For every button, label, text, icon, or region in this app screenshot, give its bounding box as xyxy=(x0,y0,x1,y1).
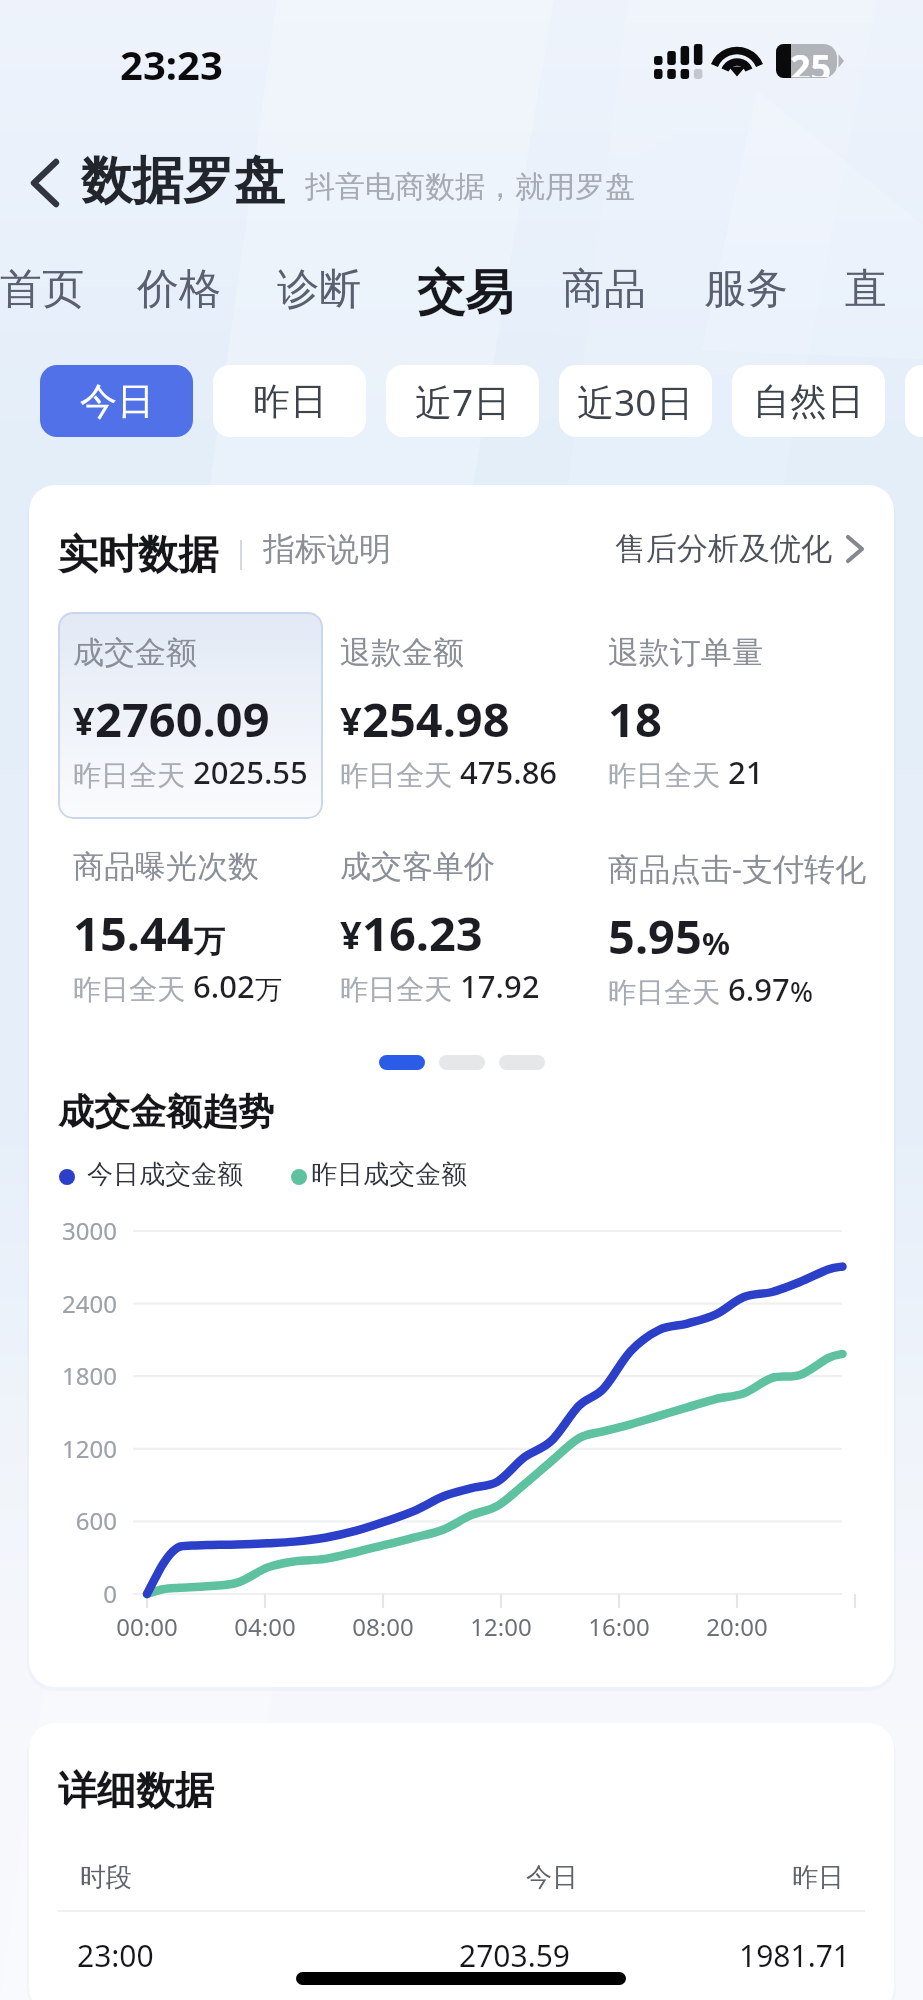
staticText: 昨日全天 xyxy=(73,972,185,1007)
staticText: 价格 xyxy=(137,263,221,316)
staticText: 直 xyxy=(845,263,887,316)
staticText: 今日 xyxy=(526,1861,578,1894)
staticText: 600 xyxy=(29,1504,117,1537)
button[interactable]: 23:00 xyxy=(29,1923,894,2000)
staticText: 昨日 xyxy=(792,1861,844,1894)
staticText: 2703.59 xyxy=(459,1935,570,1976)
staticText: 首页 xyxy=(0,263,84,316)
staticText: 20:00 xyxy=(677,1610,797,1643)
staticText: 昨日 xyxy=(253,378,327,425)
staticText: 23:00 xyxy=(77,1935,154,1976)
button[interactable]: 价格 xyxy=(123,255,235,324)
button[interactable]: 自 xyxy=(905,365,923,437)
staticText: 2400 xyxy=(29,1287,117,1320)
button[interactable]: Back xyxy=(12,150,78,216)
button[interactable] xyxy=(58,612,323,819)
staticText: 近7日 xyxy=(415,376,511,427)
staticText: % xyxy=(702,922,730,964)
staticText: 抖音电商数据，就用罗盘 xyxy=(305,168,635,206)
staticText: 1981.71 xyxy=(739,1935,850,1976)
button[interactable]: 昨日 xyxy=(213,365,366,437)
button[interactable]: 诊断 xyxy=(263,255,375,324)
staticText: 成交金额趋势 xyxy=(58,1089,274,1134)
button[interactable]: 近7日 xyxy=(386,365,539,437)
staticText: ¥ xyxy=(73,694,95,746)
staticText: 21 xyxy=(728,751,764,793)
staticText: 指标说明 xyxy=(263,529,391,569)
staticText: 成交金额 xyxy=(73,633,197,672)
staticText: 6.02 xyxy=(193,965,255,1007)
staticText: 昨日全天 xyxy=(608,758,720,793)
staticText: 今日 xyxy=(80,378,154,425)
button[interactable]: 直 xyxy=(831,255,901,324)
staticText: 万 xyxy=(255,973,282,1007)
staticText: 详细数据 xyxy=(58,1766,214,1815)
staticText: 16:00 xyxy=(559,1610,679,1643)
staticText: 退款金额 xyxy=(340,633,464,672)
staticText: 6.97 xyxy=(728,968,790,1010)
staticText: 退款订单量 xyxy=(608,633,763,672)
staticText: 数据罗盘 xyxy=(81,149,285,213)
staticText: 00:00 xyxy=(87,1610,207,1643)
button[interactable]: 指标说明 xyxy=(253,529,401,569)
staticText: % xyxy=(790,973,814,1010)
button[interactable]: 服务 xyxy=(690,255,802,324)
staticText: 昨日全天 xyxy=(73,758,185,793)
staticText: 17.92 xyxy=(460,965,540,1007)
staticText: 售后分析及优化 xyxy=(615,529,832,568)
staticText: 近30日 xyxy=(577,376,694,427)
staticText: 04:00 xyxy=(205,1610,325,1643)
staticText: 昨日全天 xyxy=(608,975,720,1010)
staticText: 昨日全天 xyxy=(340,972,452,1007)
staticText: 商品点击-支付转化 xyxy=(608,847,866,889)
staticText: 交易 xyxy=(417,263,513,323)
staticText: 25 xyxy=(790,43,832,77)
button[interactable]: 近30日 xyxy=(559,365,712,437)
staticText: 23:23 xyxy=(120,37,223,91)
staticText: 今日成交金额 xyxy=(87,1158,243,1191)
staticText: 万 xyxy=(194,922,225,961)
staticText: 15.44 xyxy=(73,901,194,965)
staticText: 昨日成交金额 xyxy=(311,1158,467,1191)
staticText: 2025.55 xyxy=(193,751,308,793)
staticText: 1200 xyxy=(29,1432,117,1465)
staticText: 12:00 xyxy=(441,1610,561,1643)
staticText: ¥ xyxy=(340,908,362,960)
button[interactable]: 售后分析及优化 xyxy=(615,529,874,568)
staticText: 诊断 xyxy=(277,263,361,316)
staticText: 2760.09 xyxy=(95,687,270,751)
staticText: 自然日 xyxy=(753,378,864,425)
staticText: ¥ xyxy=(340,694,362,746)
staticText: 0 xyxy=(29,1577,117,1610)
staticText: 475.86 xyxy=(460,751,558,793)
staticText: 昨日全天 xyxy=(340,758,452,793)
staticText: 5.95 xyxy=(608,904,702,968)
button[interactable]: 交易 xyxy=(403,255,527,331)
staticText: 商品曝光次数 xyxy=(73,847,259,886)
staticText: 254.98 xyxy=(362,687,510,751)
staticText: 服务 xyxy=(704,263,788,316)
staticText: 08:00 xyxy=(323,1610,443,1643)
button[interactable]: 自然日 xyxy=(732,365,885,437)
button[interactable]: 首页 xyxy=(0,255,98,324)
staticText: 3000 xyxy=(29,1214,117,1247)
staticText: 时段 xyxy=(80,1861,132,1894)
button[interactable]: 今日 xyxy=(40,365,193,437)
staticText: 实时数据 xyxy=(58,529,218,579)
staticText: 商品 xyxy=(562,263,646,316)
staticText: 18 xyxy=(608,687,662,751)
button[interactable]: 商品 xyxy=(548,255,660,324)
staticText: 1800 xyxy=(29,1359,117,1392)
staticText: 成交客单价 xyxy=(340,847,495,886)
staticText: 16.23 xyxy=(362,901,483,965)
